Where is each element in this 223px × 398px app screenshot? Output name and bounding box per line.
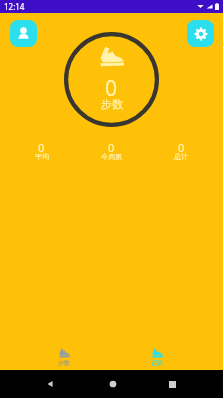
staticText: 0 [178,140,185,155]
button[interactable]: 0 [7,140,76,162]
staticText: 总计 [174,152,188,161]
button[interactable]: 记录 [137,346,177,367]
staticText: 0 [38,140,45,155]
staticText: 步数 [101,97,123,111]
button[interactable]: Back [43,377,57,391]
button[interactable]: Profile [10,20,37,47]
staticText: 0 [105,74,118,103]
staticText: 今周累 [101,152,122,161]
staticText: 记录 [151,359,163,367]
button[interactable]: 0 [146,140,216,162]
staticText: 平均 [35,152,49,161]
staticText: 0 [108,140,115,155]
button[interactable]: Settings [187,20,214,47]
button[interactable]: Recents [165,377,179,391]
staticText: 12:14 [4,1,25,12]
button[interactable]: Home [106,377,120,391]
staticText: 步数 [58,359,70,367]
button[interactable]: 0 [76,140,146,162]
button[interactable]: 步数 [44,346,84,367]
